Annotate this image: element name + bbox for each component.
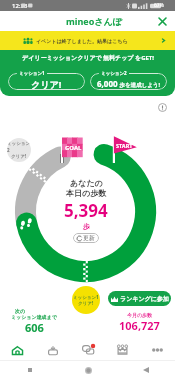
staticText: GOAL [65, 144, 82, 152]
button[interactable]: ミッション2 [7, 138, 31, 162]
staticText: 更新 [83, 234, 95, 242]
button[interactable]: ミッション1 [72, 286, 100, 314]
staticText: mineoさんぽ [66, 15, 122, 27]
staticText: イベントは終了しました。結果はこちら [36, 38, 128, 44]
button[interactable]: ランキングに参加 [108, 291, 171, 306]
staticText: 106,727 [119, 318, 160, 333]
button[interactable]: Chat [70, 340, 105, 360]
button[interactable]: Back [138, 362, 154, 378]
staticText: あなたの [70, 178, 103, 188]
staticText: デイリーミッションクリアで [22, 54, 102, 62]
staticText: 歩 [83, 222, 90, 231]
button[interactable]: 更新 [73, 233, 99, 243]
staticText: 次の [15, 308, 26, 314]
button[interactable]: Ranking [105, 340, 140, 360]
staticText: 67% [154, 2, 164, 9]
button[interactable]: Recents [22, 362, 38, 378]
staticText: ミッション1 [19, 70, 45, 76]
staticText: 606 [25, 320, 44, 335]
staticText: ミッション達成まで [11, 314, 57, 320]
staticText: 歩を達成しよう! [118, 81, 160, 89]
staticText: 5,394 [64, 199, 108, 222]
staticText: START [116, 142, 133, 149]
staticText: クリア! [11, 153, 27, 159]
button[interactable]: 6,000 [90, 73, 167, 90]
button[interactable]: クリア! [8, 73, 85, 90]
staticText: ミッション2 [101, 70, 127, 76]
staticText: 6,000 [97, 78, 118, 89]
staticText: 無料チップ [103, 54, 134, 62]
staticText: 今月の歩数 [127, 312, 153, 318]
button[interactable]: イベントは終了しました。結果はこちら [0, 31, 175, 50]
button[interactable]: Home [80, 362, 96, 378]
button[interactable]: More [140, 340, 175, 360]
button[interactable]: Close [149, 11, 175, 31]
staticText: をGET! [135, 54, 154, 62]
staticText: クリア! [31, 78, 62, 90]
button[interactable]: Home [0, 340, 35, 360]
staticText: 12:33 [12, 2, 28, 10]
button[interactable]: Information [154, 99, 170, 115]
staticText: ミッション1 [73, 294, 99, 300]
button[interactable]: Chip [35, 340, 70, 360]
staticText: クリア! [78, 300, 94, 306]
staticText: ミッション2 [7, 141, 31, 153]
staticText: ランキングに参加 [120, 295, 169, 303]
staticText: 本日の歩数 [66, 188, 107, 198]
